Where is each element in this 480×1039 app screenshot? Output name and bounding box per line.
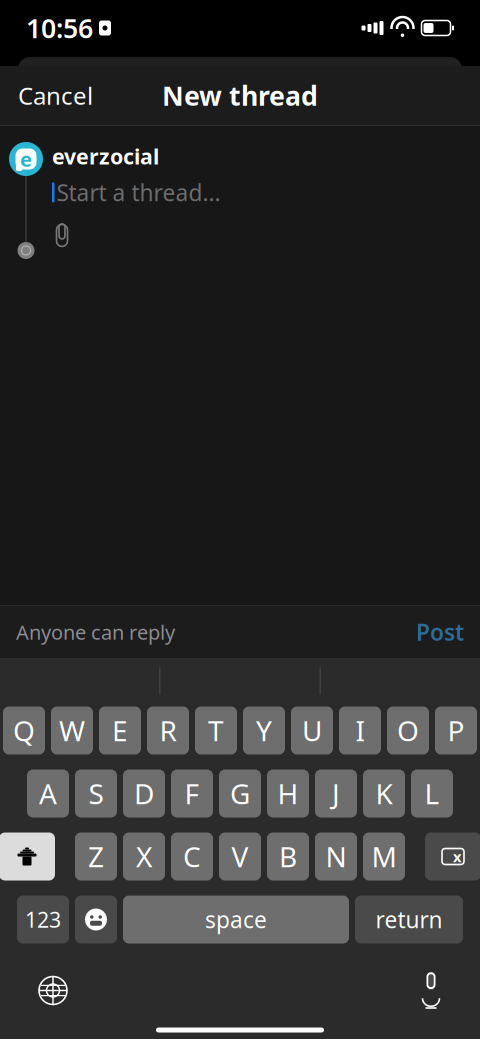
staticText: J: [332, 775, 340, 812]
staticText: R: [159, 712, 176, 749]
button[interactable]: Change keyboard: [28, 965, 78, 1015]
staticText: F: [184, 775, 199, 812]
button[interactable]: Emoji: [75, 895, 117, 943]
staticText: x: [453, 847, 461, 866]
button[interactable]: V: [219, 832, 261, 880]
button[interactable]: C: [171, 832, 213, 880]
button[interactable]: Post: [416, 617, 464, 647]
button[interactable]: Shift: [0, 832, 55, 880]
button[interactable]: Q: [3, 706, 45, 754]
staticText: B: [279, 838, 297, 875]
button[interactable]: U: [291, 706, 333, 754]
staticText: Z: [88, 838, 104, 875]
staticText: L: [424, 775, 439, 812]
button[interactable]: G: [219, 769, 261, 817]
button[interactable]: X: [123, 832, 165, 880]
staticText: S: [88, 775, 103, 812]
staticText: Post: [416, 617, 464, 647]
staticText: H: [277, 775, 298, 812]
staticText: return: [375, 904, 442, 934]
staticText: 10:56: [26, 10, 93, 46]
button[interactable]: R: [147, 706, 189, 754]
button[interactable]: O: [387, 706, 429, 754]
staticText: Q: [13, 712, 35, 749]
staticText: Cancel: [18, 80, 93, 111]
staticText: Anyone can reply: [16, 619, 175, 645]
staticText: O: [397, 712, 419, 749]
staticText: U: [302, 712, 322, 749]
button[interactable]: T: [195, 706, 237, 754]
staticText: T: [208, 712, 224, 749]
staticText: C: [183, 838, 201, 875]
button[interactable]: S: [75, 769, 117, 817]
staticText: K: [375, 775, 392, 812]
staticText: W: [59, 712, 85, 749]
staticText: e: [20, 146, 32, 172]
staticText: A: [39, 775, 57, 812]
button[interactable]: Z: [75, 832, 117, 880]
button[interactable]: N: [315, 832, 357, 880]
staticText: G: [230, 775, 250, 812]
button[interactable]: F: [171, 769, 213, 817]
button[interactable]: Cancel: [0, 66, 111, 125]
button[interactable]: Y: [243, 706, 285, 754]
staticText: 123: [25, 905, 61, 934]
button[interactable]: J: [315, 769, 357, 817]
button[interactable]: Delete: [425, 832, 480, 880]
staticText: Start a thread...: [56, 177, 220, 207]
staticText: D: [134, 775, 154, 812]
staticText: New thread: [162, 78, 318, 113]
staticText: everzocial: [52, 142, 159, 170]
button[interactable]: space: [123, 895, 349, 943]
staticText: M: [371, 838, 396, 875]
button[interactable]: H: [267, 769, 309, 817]
button[interactable]: W: [51, 706, 93, 754]
button[interactable]: P: [435, 706, 477, 754]
button[interactable]: D: [123, 769, 165, 817]
button[interactable]: K: [363, 769, 405, 817]
button[interactable]: A: [27, 769, 69, 817]
button[interactable]: Attach media: [52, 221, 80, 249]
button[interactable]: Dictation: [410, 965, 452, 1015]
button[interactable]: E: [99, 706, 141, 754]
staticText: E: [112, 712, 128, 749]
staticText: Y: [256, 712, 272, 749]
button[interactable]: B: [267, 832, 309, 880]
staticText: I: [355, 712, 364, 749]
button[interactable]: L: [411, 769, 453, 817]
staticText: space: [205, 904, 267, 934]
button[interactable]: M: [363, 832, 405, 880]
staticText: X: [136, 838, 152, 875]
staticText: N: [325, 838, 346, 875]
staticText: P: [447, 712, 464, 749]
button[interactable]: I: [339, 706, 381, 754]
button[interactable]: return: [355, 895, 463, 943]
button[interactable]: 123: [17, 895, 69, 943]
staticText: V: [231, 838, 248, 875]
